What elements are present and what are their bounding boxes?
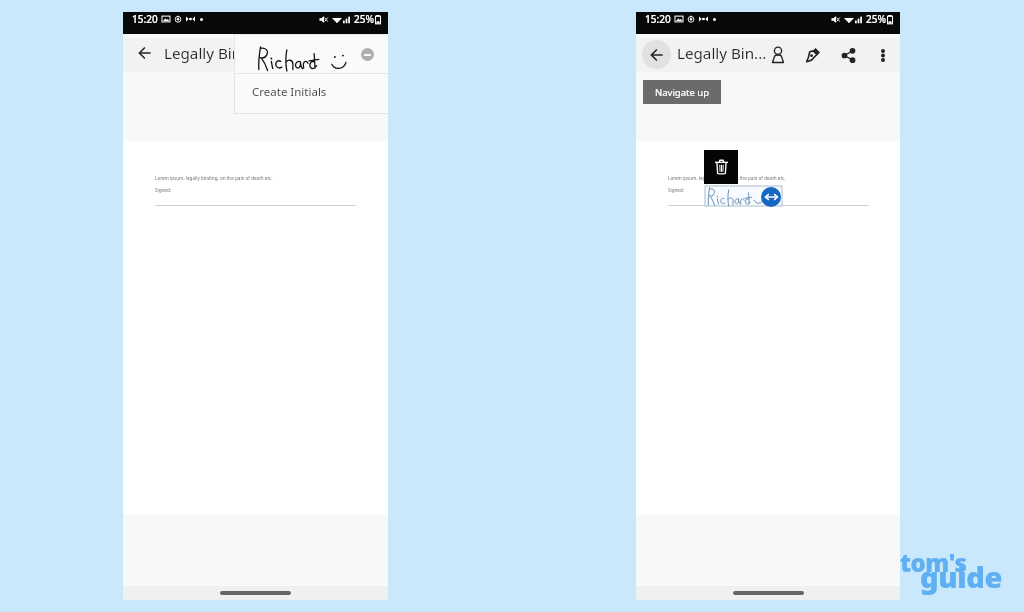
staticText: 15:20 xyxy=(132,12,158,26)
button[interactable]: Remove signature xyxy=(361,48,374,61)
staticText: guide xyxy=(920,557,1003,596)
staticText: 25% xyxy=(866,12,886,26)
staticText: 15:20 xyxy=(645,12,671,26)
button[interactable]: Sign document xyxy=(802,44,824,66)
staticText: Lorem ipsum, legally binding, on the pai… xyxy=(668,175,786,181)
button[interactable]: Signature field xyxy=(705,186,782,206)
staticText: Lorem ipsum, legally binding, on the pai… xyxy=(155,175,273,181)
staticText: tom's xyxy=(900,546,967,579)
button[interactable]: Create Initials xyxy=(234,74,388,114)
button[interactable]: Delete signature xyxy=(704,150,738,184)
button[interactable]: Richard signature xyxy=(234,34,388,73)
staticText: 25% xyxy=(354,12,374,26)
staticText: Legally Bin... xyxy=(677,43,767,64)
button[interactable]: More options xyxy=(873,45,893,65)
button[interactable]: Navigate up xyxy=(642,40,671,69)
button[interactable]: Account xyxy=(767,44,789,66)
button[interactable]: Navigate up xyxy=(133,41,157,65)
staticText: Create Initials xyxy=(252,84,327,100)
button[interactable]: Resize signature xyxy=(761,187,781,207)
staticText: Navigate up xyxy=(655,86,709,99)
staticText: Signed: xyxy=(668,187,685,193)
staticText: Legally Bin... xyxy=(164,43,254,64)
staticText: Signed: xyxy=(155,187,172,193)
button[interactable]: Share xyxy=(837,44,859,66)
